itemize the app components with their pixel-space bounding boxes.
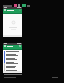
button[interactable]: Open navigation drawer [3, 43, 22, 73]
button[interactable] [3, 67, 22, 69]
button[interactable]: More options [19, 9, 21, 11]
button[interactable]: Navigate up [3, 7, 22, 37]
button[interactable] [3, 61, 22, 63]
button[interactable] [3, 53, 22, 55]
button[interactable]: Navigate up [3, 9, 22, 13]
button[interactable] [3, 57, 22, 59]
button[interactable] [3, 69, 22, 71]
button[interactable] [3, 63, 22, 65]
button[interactable] [3, 55, 22, 57]
button[interactable]: Search [19, 45, 21, 47]
button[interactable] [3, 59, 22, 61]
button[interactable]: Open navigation drawer [3, 45, 22, 49]
button[interactable] [3, 51, 22, 53]
button[interactable] [3, 65, 22, 67]
